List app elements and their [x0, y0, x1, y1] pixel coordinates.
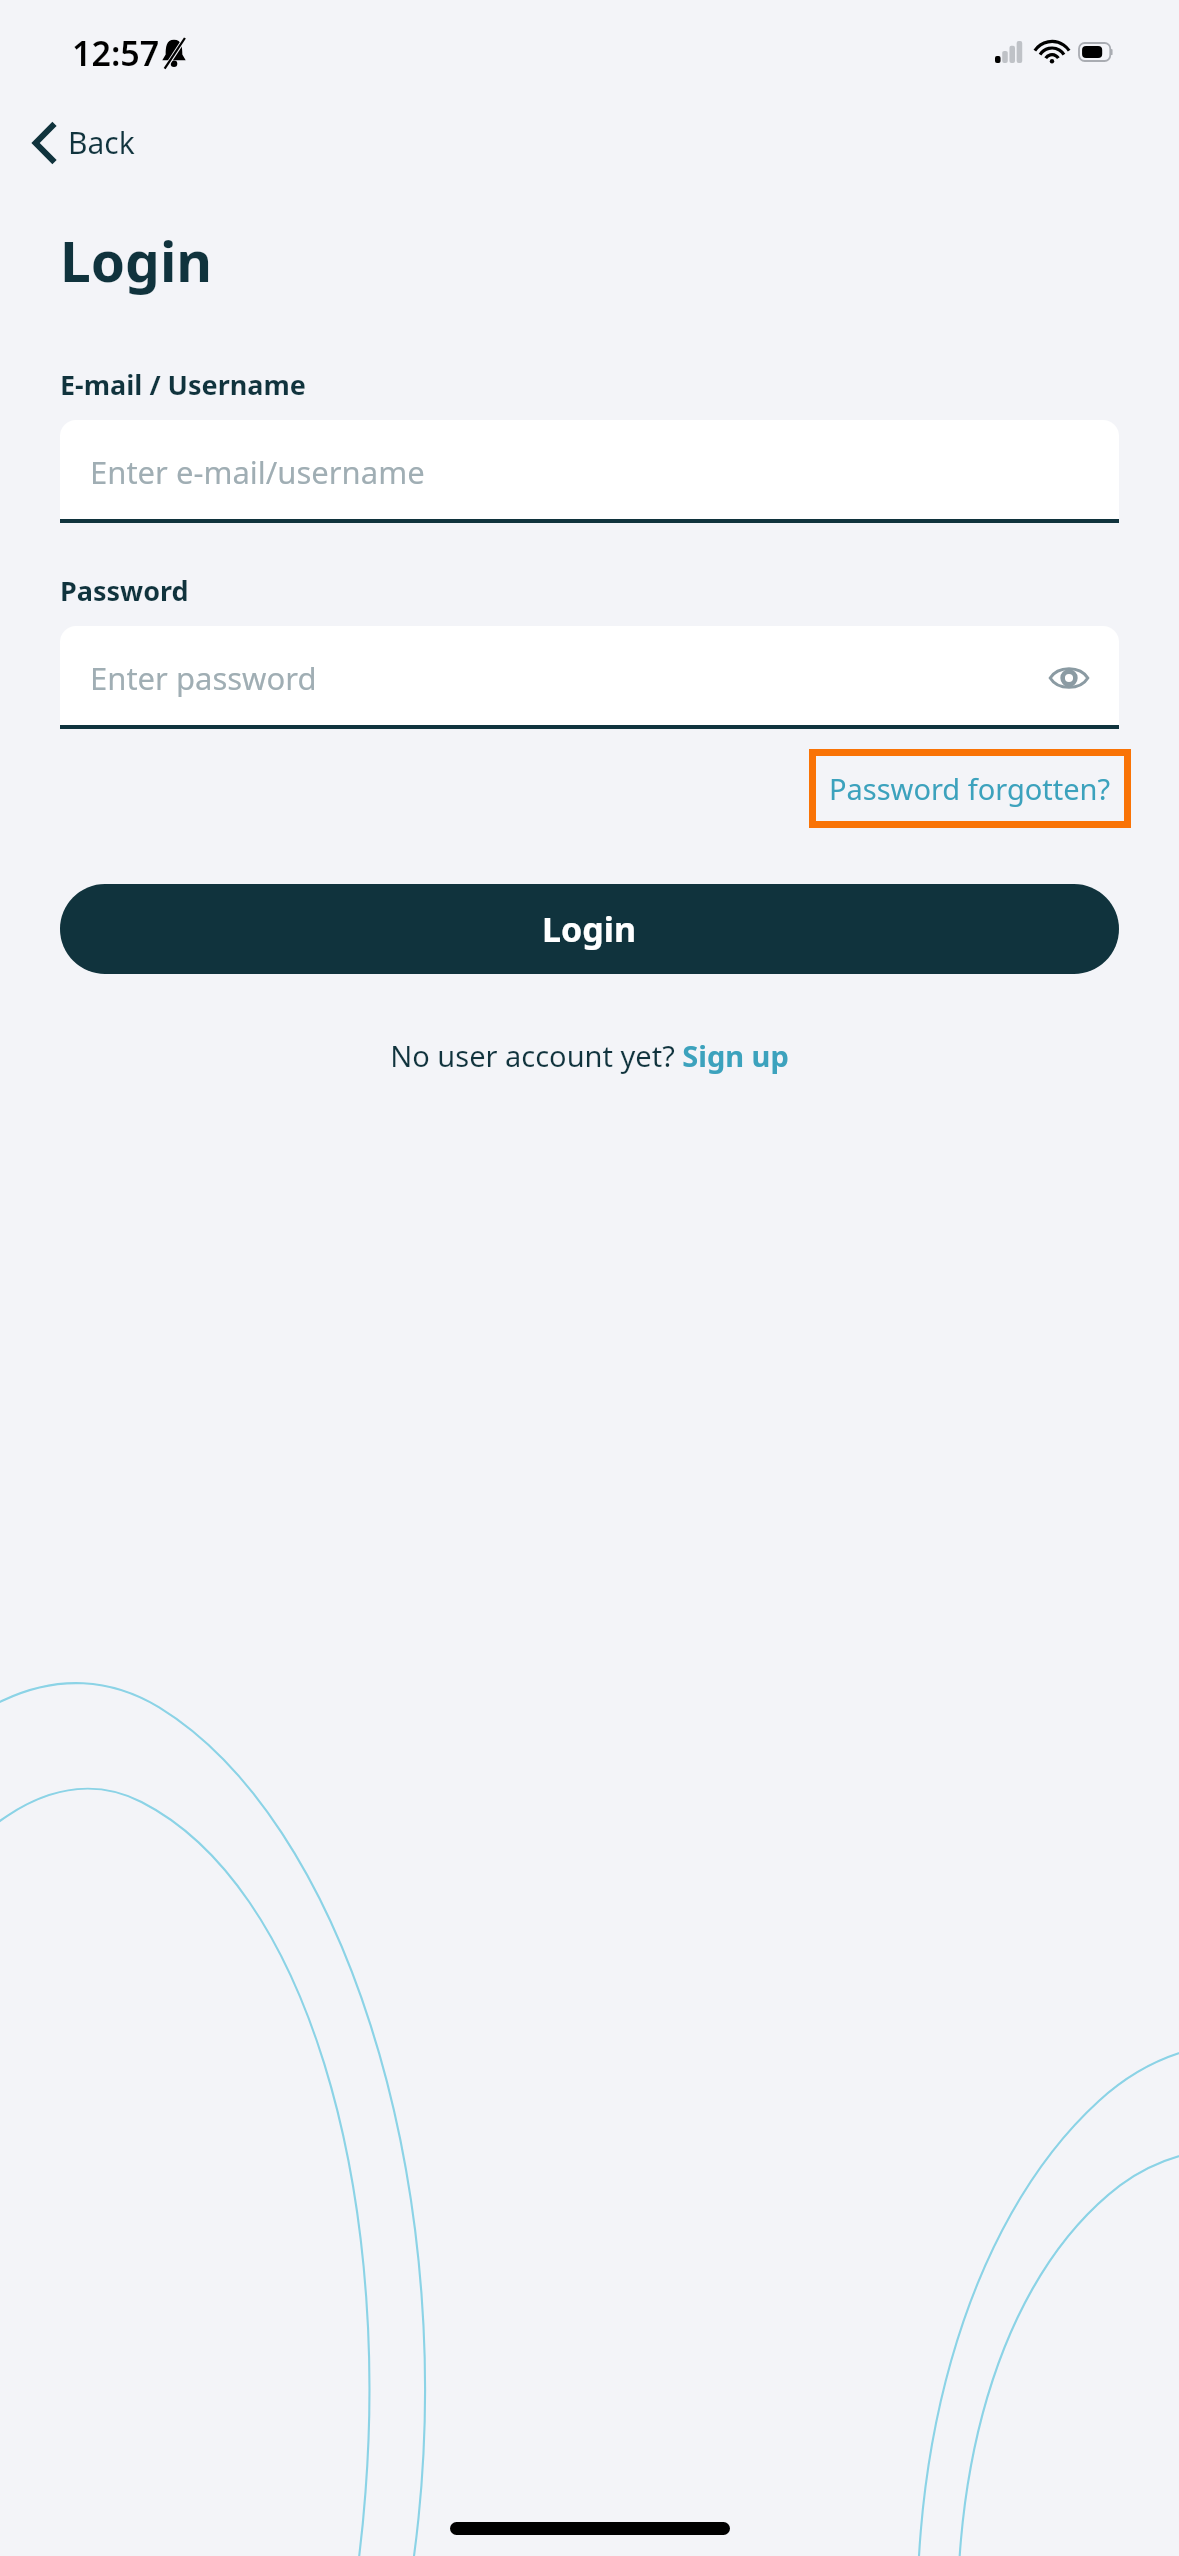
- staticText: No user account yet? Sign up: [390, 1036, 789, 1075]
- button[interactable]: Show password: [1039, 655, 1099, 701]
- staticText: E-mail / Username: [60, 366, 306, 403]
- staticText: Enter e-mail/username: [90, 451, 425, 493]
- button[interactable]: Login: [60, 884, 1119, 974]
- staticText: Back: [68, 122, 135, 163]
- staticText: Enter password: [90, 657, 317, 699]
- button[interactable]: No user account yet? Sign up: [390, 1036, 789, 1075]
- staticText: Password: [60, 572, 189, 609]
- button[interactable]: Password forgotten?: [809, 749, 1131, 828]
- staticText: Login: [542, 906, 637, 952]
- staticText: Login: [60, 223, 213, 298]
- staticText: 12:57: [72, 30, 160, 76]
- button[interactable]: Enter password: [60, 626, 1119, 729]
- button[interactable]: Enter e-mail/username: [60, 420, 1119, 523]
- staticText: Password forgotten?: [829, 769, 1111, 808]
- button[interactable]: Back: [22, 112, 155, 173]
